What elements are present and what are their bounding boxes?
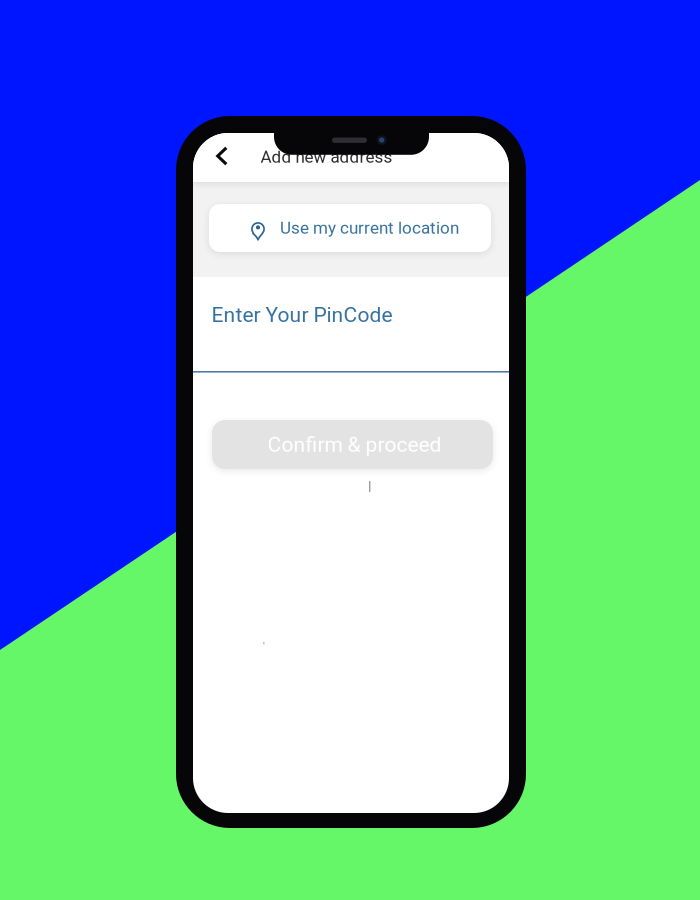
button[interactable]: Confirm & proceed [212, 420, 493, 469]
staticText: Confirm & proceed [267, 432, 441, 457]
staticText: Enter Your PinCode [211, 302, 392, 327]
staticText: Add new address [260, 147, 392, 167]
button[interactable]: Back [204, 138, 240, 174]
button[interactable]: Use my current location [209, 204, 491, 252]
staticText: Use my current location [280, 218, 459, 238]
